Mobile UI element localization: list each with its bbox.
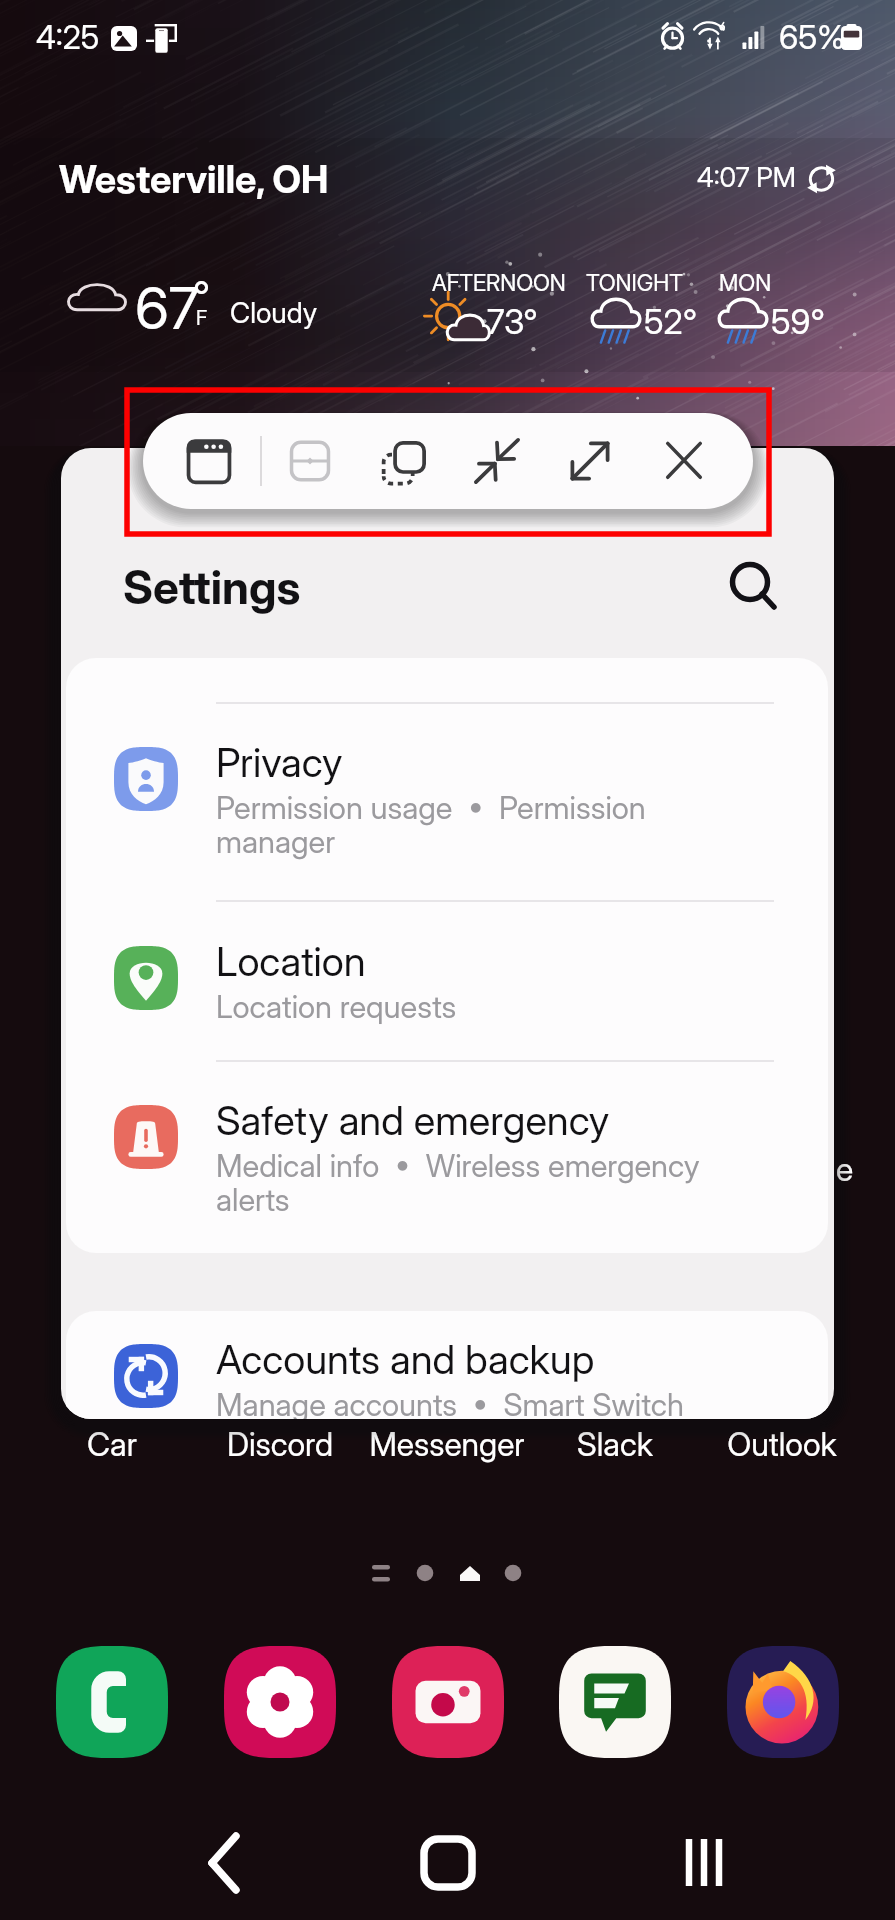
staticText: Outlook [698, 1425, 866, 1464]
staticText: Settings [123, 559, 301, 615]
staticText: Westerville, OH [59, 156, 329, 202]
button[interactable]: Accounts and backup [66, 1313, 828, 1419]
staticText: Medical info • Wireless emergency alerts [216, 1147, 700, 1219]
button[interactable]: Messages [559, 1646, 671, 1758]
button[interactable]: Back [130, 1818, 280, 1914]
button[interactable]: Minimise [451, 413, 543, 509]
button[interactable]: Outlook [698, 1425, 866, 1471]
staticText: 59° [771, 301, 825, 342]
staticText: Location requests [216, 988, 457, 1026]
staticText: Safety and emergency [216, 1096, 610, 1144]
button[interactable]: Close [638, 413, 730, 509]
staticText: 4:25 [36, 18, 100, 57]
staticText: Slack [531, 1425, 699, 1464]
staticText: 4:07 PM [697, 161, 796, 194]
staticText: Discord [196, 1425, 364, 1464]
staticText: 52° [644, 301, 698, 342]
button[interactable]: Location [66, 915, 828, 1065]
staticText: Permission usage • Permission manager [216, 789, 646, 861]
button[interactable]: Picture in picture [357, 413, 449, 509]
button[interactable]: Discord [196, 1425, 364, 1471]
button[interactable]: Slack [531, 1425, 699, 1471]
button[interactable]: Westerville, OH [0, 140, 895, 372]
staticText: TONIGHT [586, 269, 683, 296]
button[interactable]: Camera [392, 1646, 504, 1758]
staticText: Manage accounts • Smart Switch [216, 1386, 684, 1419]
staticText: Location [216, 937, 366, 985]
button[interactable]: Phone [56, 1646, 168, 1758]
staticText: Accounts and backup [216, 1335, 595, 1383]
staticText: Messenger [363, 1425, 531, 1464]
staticText: 67 [135, 273, 199, 343]
button[interactable]: Car [28, 1425, 196, 1471]
button[interactable]: Pop-up view [163, 413, 255, 509]
staticText: Car [28, 1425, 196, 1464]
button[interactable]: Search [711, 540, 799, 628]
button[interactable]: Firefox [727, 1646, 839, 1758]
staticText: F [196, 306, 208, 330]
staticText: e [836, 1150, 854, 1189]
staticText: MON [719, 269, 772, 296]
button[interactable]: Safety and emergency [66, 1074, 828, 1253]
button[interactable]: Messenger [363, 1425, 531, 1471]
staticText: AFTERNOON [432, 269, 566, 296]
staticText: Cloudy [230, 296, 317, 330]
button[interactable]: Recents [638, 1818, 773, 1914]
button[interactable]: Gallery [224, 1646, 336, 1758]
button[interactable]: Home [380, 1818, 515, 1914]
staticText: 65% [779, 17, 846, 57]
button[interactable]: Maximise [544, 413, 636, 509]
button[interactable]: Split screen [264, 413, 356, 509]
staticText: Privacy [216, 738, 343, 786]
button[interactable]: Privacy [66, 716, 828, 902]
staticText: 73° [487, 301, 538, 342]
staticText: ° [193, 271, 210, 319]
